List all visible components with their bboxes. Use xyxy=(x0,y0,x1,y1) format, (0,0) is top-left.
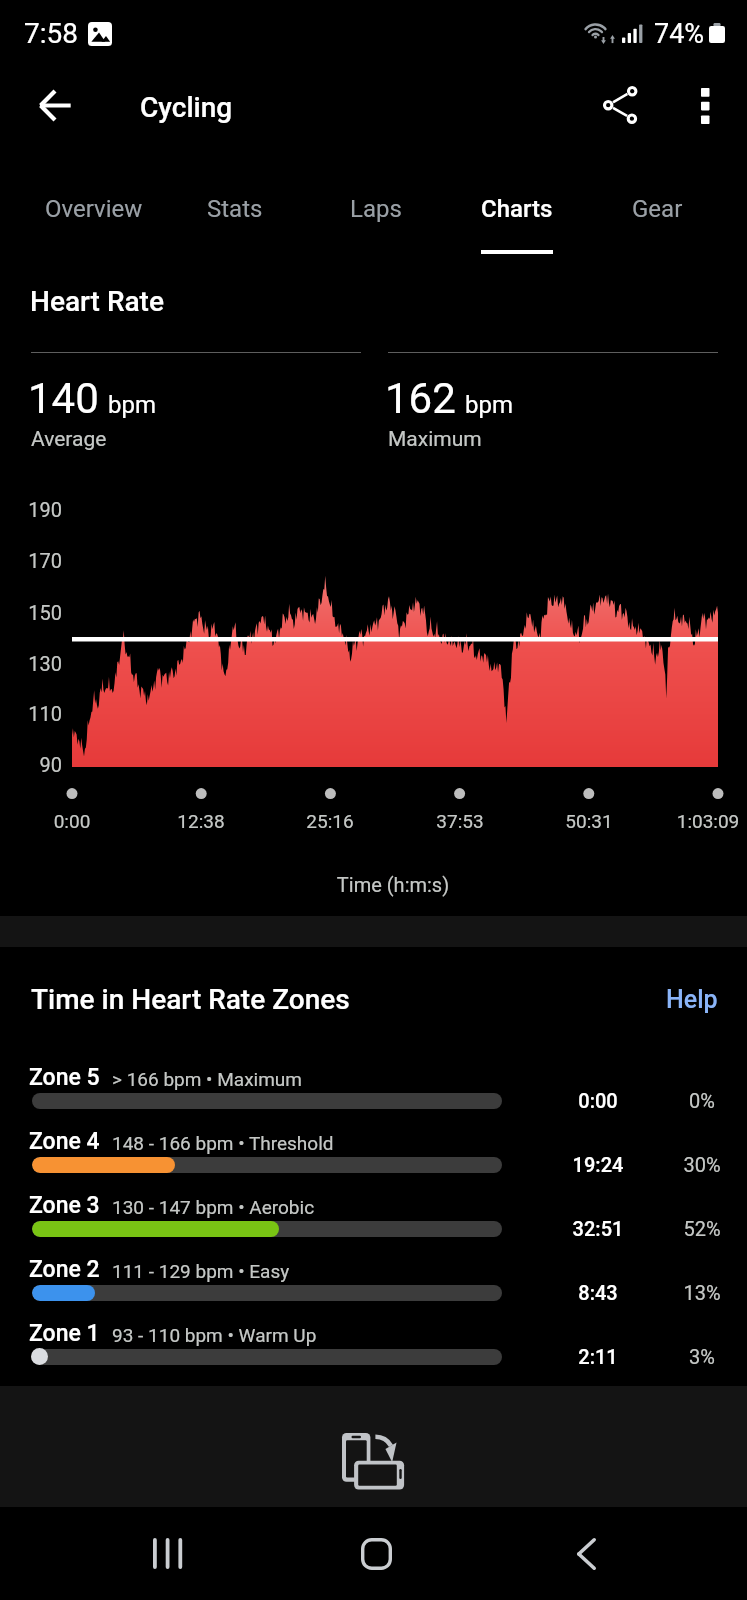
staticText: Time (h:m:s) xyxy=(332,873,454,896)
button[interactable]: Recent apps xyxy=(120,1507,216,1600)
staticText: Cycling xyxy=(140,91,233,124)
staticText: 150 xyxy=(0,601,62,624)
staticText: 111 - 129 bpm • Easy xyxy=(112,1260,290,1282)
staticText: 93 - 110 bpm • Warm Up xyxy=(112,1324,317,1346)
button[interactable]: Zone 2 xyxy=(0,1248,747,1312)
staticText: 170 xyxy=(0,549,62,572)
button[interactable]: Laps xyxy=(305,160,446,260)
staticText: 25:16 xyxy=(270,810,390,832)
staticText: Gear xyxy=(632,195,683,223)
staticText: 32:51 xyxy=(538,1217,658,1240)
button[interactable]: Gear xyxy=(587,160,728,260)
button[interactable]: Zone 1 xyxy=(0,1312,747,1376)
staticText: 12:38 xyxy=(141,810,261,832)
staticText: 13% xyxy=(642,1281,747,1304)
staticText: 52% xyxy=(642,1217,747,1240)
staticText: 110 xyxy=(0,702,62,725)
staticText: 1:03:09 xyxy=(648,810,747,832)
staticText: 2:11 xyxy=(538,1345,658,1368)
button[interactable]: Back xyxy=(538,1507,634,1600)
staticText: 140 xyxy=(28,374,99,423)
staticText: bpm xyxy=(465,391,513,419)
staticText: Maximum xyxy=(388,427,482,452)
button[interactable]: Stats xyxy=(164,160,305,260)
staticText: Zone 4 xyxy=(29,1128,100,1155)
staticText: 8:43 xyxy=(538,1281,658,1304)
staticText: Help xyxy=(666,985,718,1014)
button[interactable]: Overview xyxy=(23,160,164,260)
button[interactable]: More options xyxy=(673,74,737,138)
staticText: 0% xyxy=(642,1089,747,1112)
staticText: 0:00 xyxy=(12,810,132,832)
staticText: 0:00 xyxy=(538,1089,658,1112)
staticText: 3% xyxy=(642,1345,747,1368)
staticText: Zone 2 xyxy=(29,1256,100,1283)
button[interactable]: Zone 4 xyxy=(0,1120,747,1184)
button[interactable]: Navigate up xyxy=(22,73,87,138)
staticText: Average xyxy=(31,427,107,452)
staticText: 130 - 147 bpm • Aerobic xyxy=(112,1196,315,1218)
button[interactable]: Rotate screen xyxy=(331,1422,416,1502)
staticText: Laps xyxy=(350,195,402,223)
staticText: 162 xyxy=(385,374,456,423)
staticText: Stats xyxy=(207,195,263,223)
staticText: 37:53 xyxy=(400,810,520,832)
button[interactable]: Charts xyxy=(446,160,587,260)
staticText: Time in Heart Rate Zones xyxy=(31,983,350,1016)
staticText: 50:31 xyxy=(529,810,649,832)
button[interactable]: Share xyxy=(589,73,653,137)
staticText: Heart Rate xyxy=(30,285,164,318)
staticText: Zone 1 xyxy=(29,1320,100,1347)
staticText: Zone 3 xyxy=(29,1192,100,1219)
button[interactable]: Zone 5 xyxy=(0,1056,747,1120)
staticText: bpm xyxy=(108,391,156,419)
staticText: 7:58 xyxy=(24,17,78,50)
staticText: 19:24 xyxy=(538,1153,658,1176)
staticText: Zone 5 xyxy=(29,1064,100,1091)
staticText: 30% xyxy=(642,1153,747,1176)
staticText: 90 xyxy=(0,753,62,776)
staticText: 190 xyxy=(0,498,62,521)
staticText: Charts xyxy=(481,195,553,223)
button[interactable]: Help xyxy=(652,973,732,1026)
staticText: 130 xyxy=(0,652,62,675)
staticText: Overview xyxy=(45,195,143,223)
button[interactable]: Home xyxy=(328,1507,424,1600)
staticText: 148 - 166 bpm • Threshold xyxy=(112,1132,334,1154)
staticText: 74% xyxy=(654,18,705,50)
staticText: > 166 bpm • Maximum xyxy=(112,1068,302,1090)
button[interactable]: Zone 3 xyxy=(0,1184,747,1248)
